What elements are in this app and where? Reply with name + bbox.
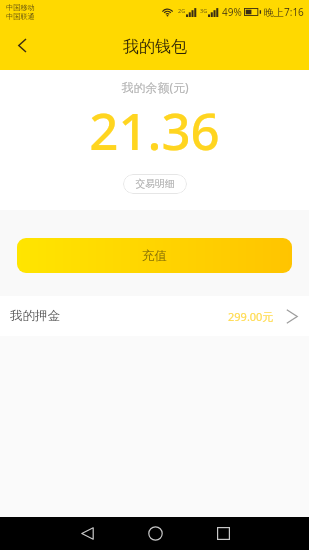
- button[interactable]: Back: [0, 24, 44, 70]
- staticText: 49%: [222, 5, 242, 19]
- staticText: 我的押金: [10, 308, 60, 324]
- staticText: 中国移动: [6, 3, 35, 12]
- staticText: 我的钱包: [123, 37, 187, 57]
- staticText: 299.00元: [228, 309, 274, 324]
- staticText: 晚上7:16: [264, 5, 304, 19]
- staticText: 3G: [200, 7, 208, 14]
- button[interactable]: Home: [121, 517, 189, 550]
- button[interactable]: 充值: [17, 238, 292, 273]
- button[interactable]: Recents: [189, 517, 257, 550]
- staticText: 2G: [178, 7, 186, 14]
- staticText: 我的余额(元): [121, 79, 189, 95]
- staticText: 中国联通: [6, 12, 35, 21]
- staticText: 充值: [142, 248, 167, 264]
- button[interactable]: 交易明细: [123, 174, 187, 194]
- staticText: 交易明细: [135, 178, 175, 190]
- button[interactable]: Back: [53, 517, 121, 550]
- staticText: 21.36: [89, 95, 220, 164]
- button[interactable]: 我的押金: [0, 296, 309, 336]
